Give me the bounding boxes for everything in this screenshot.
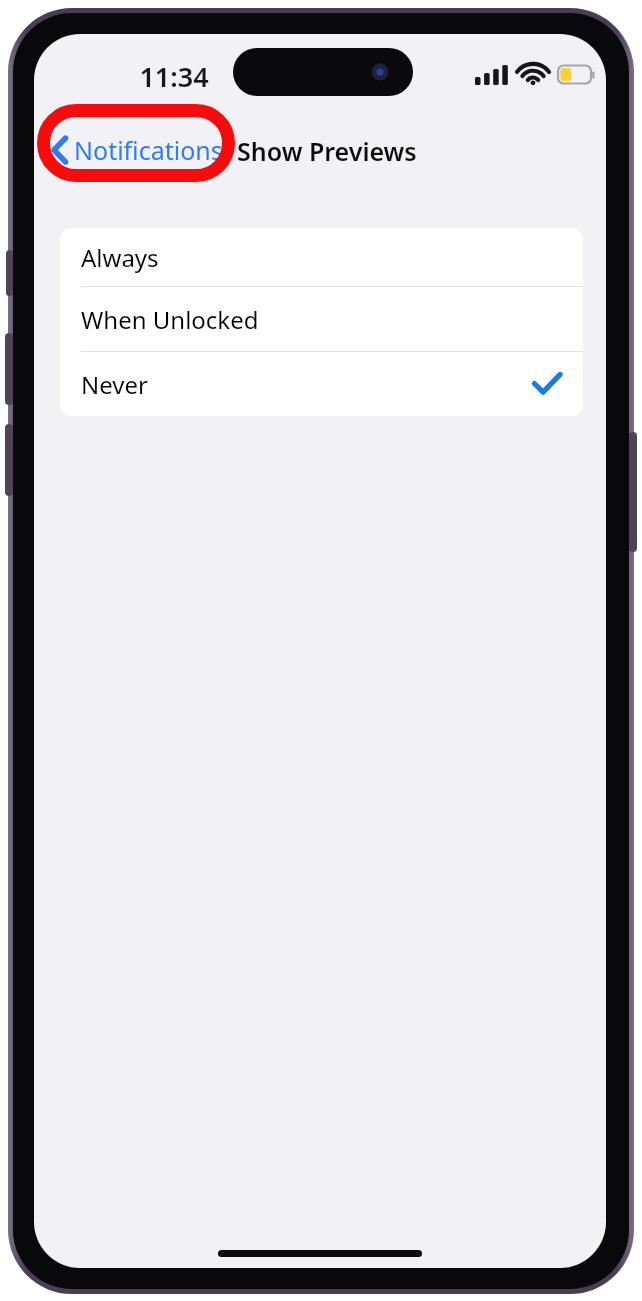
other: Selected	[533, 372, 561, 396]
button[interactable]: Always	[60, 228, 583, 286]
staticText: 11:34	[139, 58, 209, 92]
staticText: Always	[81, 241, 159, 274]
staticText: When Unlocked	[81, 303, 259, 336]
button[interactable]: Never	[60, 352, 583, 416]
staticText: Show Previews	[237, 134, 417, 168]
other: Back to Notifications	[50, 135, 70, 165]
staticText: Never	[81, 368, 148, 401]
staticText: Notifications	[74, 133, 223, 167]
button[interactable]: Back to Notifications	[48, 130, 225, 170]
button[interactable]: When Unlocked	[60, 287, 583, 351]
